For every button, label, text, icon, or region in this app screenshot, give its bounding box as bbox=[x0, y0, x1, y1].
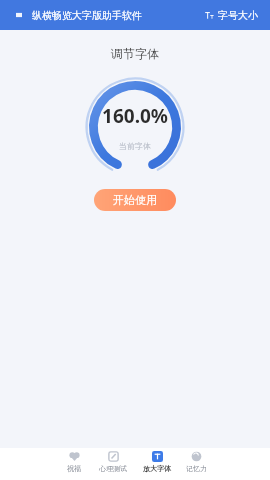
staticText: 当前字体 bbox=[119, 141, 151, 151]
button[interactable]: 开始使用 bbox=[94, 189, 176, 211]
button[interactable]: 祝福 bbox=[57, 451, 91, 473]
button[interactable]: Menu bbox=[10, 6, 28, 24]
button[interactable]: 心理测试 bbox=[91, 451, 135, 473]
button[interactable]: 放大字体 bbox=[135, 451, 179, 473]
staticText: 放大字体 bbox=[143, 464, 171, 473]
staticText: 记忆力 bbox=[186, 464, 207, 473]
button[interactable]: 字号大小 bbox=[203, 6, 260, 25]
staticText: 心理测试 bbox=[99, 464, 127, 473]
staticText: 开始使用 bbox=[113, 193, 157, 207]
staticText: 字号大小 bbox=[218, 9, 258, 22]
staticText: 祝福 bbox=[67, 464, 81, 473]
staticText: 调节字体 bbox=[111, 46, 159, 61]
staticText: 纵横畅览大字版助手软件 bbox=[32, 9, 142, 22]
staticText: 160.0% bbox=[102, 103, 168, 129]
button[interactable]: 记忆力 bbox=[179, 451, 213, 473]
